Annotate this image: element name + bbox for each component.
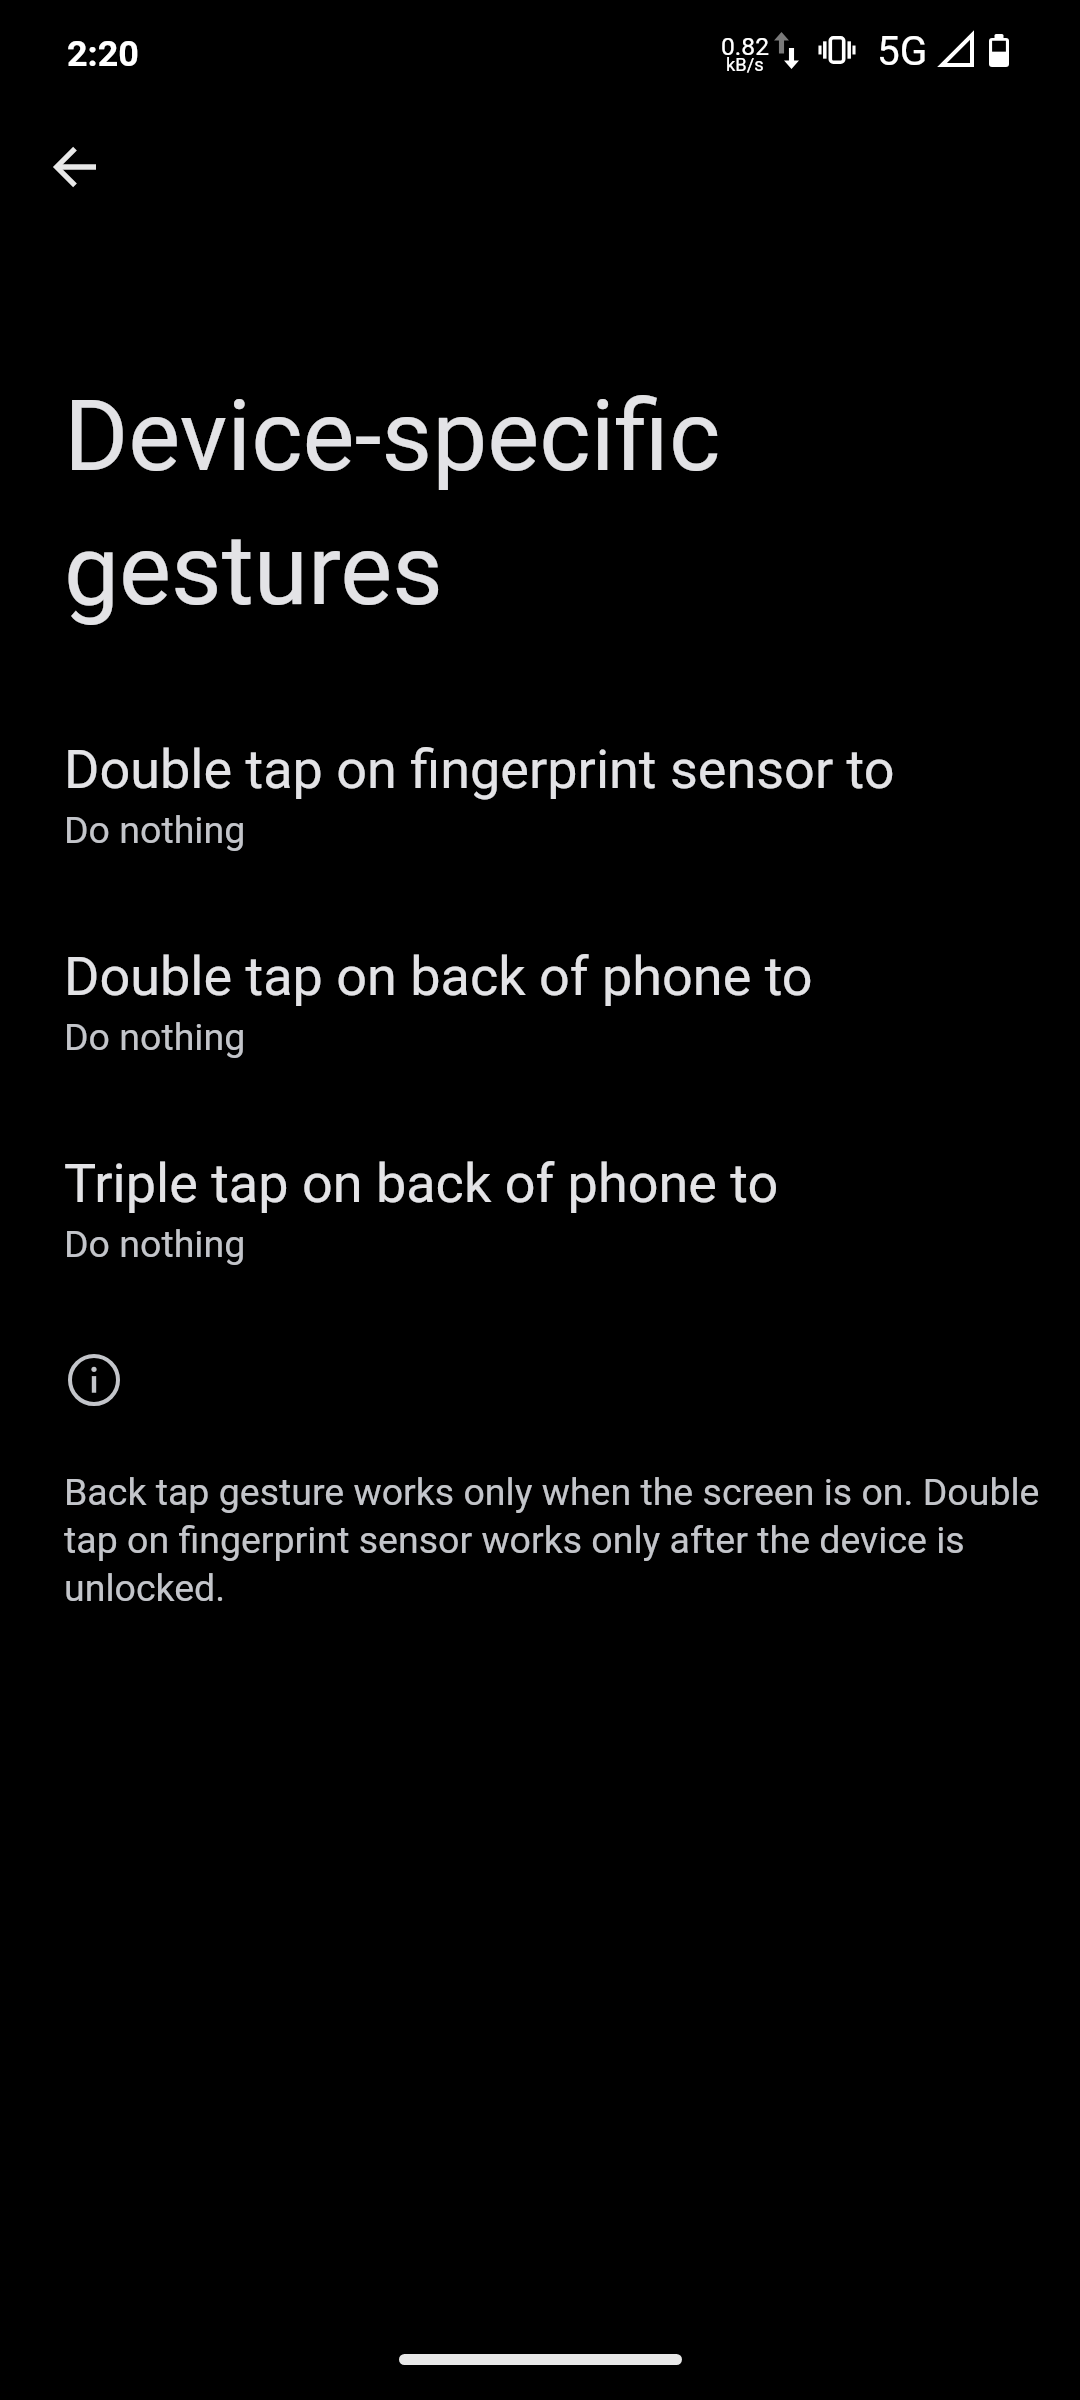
button[interactable]: Back	[3, 95, 147, 239]
button[interactable]: Information	[68, 1354, 120, 1406]
button[interactable]: Double tap on fingerprint sensor to	[0, 725, 1080, 932]
button[interactable]: Double tap on back of phone to	[0, 932, 1080, 1139]
staticText: Device-specific gestures	[64, 364, 750, 632]
staticText: Double tap on back of phone to	[64, 938, 813, 1010]
staticText: Back tap gesture works only when the scr…	[64, 1467, 1044, 1611]
staticText: kB/s	[726, 54, 764, 75]
staticText: Double tap on fingerprint sensor to	[64, 731, 895, 803]
button[interactable]: Triple tap on back of phone to	[0, 1139, 1080, 1346]
staticText: Do nothing	[64, 1219, 246, 1267]
staticText: 0.82	[721, 32, 769, 61]
staticText: 2:20	[67, 33, 139, 75]
staticText: 5G	[877, 27, 928, 74]
staticText: Triple tap on back of phone to	[64, 1145, 779, 1217]
staticText: Do nothing	[64, 1012, 246, 1060]
staticText: Do nothing	[64, 805, 246, 853]
